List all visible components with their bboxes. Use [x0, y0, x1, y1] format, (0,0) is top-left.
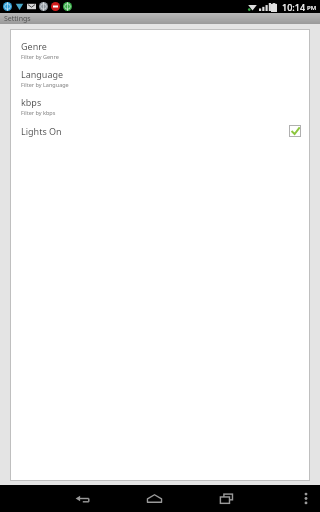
button[interactable]: More options [294, 485, 318, 512]
button[interactable]: Genre [10, 36, 310, 64]
staticText: 10:14 [282, 1, 306, 13]
staticText: kbps [21, 96, 42, 108]
staticText: Lights On [21, 125, 289, 137]
staticText: Filter by Language [21, 81, 69, 88]
staticText: Language [21, 68, 64, 80]
staticText: Filter by kbps [21, 109, 56, 116]
staticText: Genre [21, 40, 47, 52]
button[interactable]: Recent apps [205, 485, 247, 512]
button[interactable]: kbps [10, 92, 310, 120]
button[interactable]: Lights On toggle [289, 125, 301, 137]
button[interactable]: Home [133, 485, 175, 512]
button[interactable]: Lights On [10, 120, 310, 142]
staticText: PM [307, 4, 317, 12]
staticText: Settings [4, 14, 31, 24]
button[interactable]: Language [10, 64, 310, 92]
button[interactable]: Back [61, 485, 103, 512]
staticText: Filter by Genre [21, 53, 59, 60]
